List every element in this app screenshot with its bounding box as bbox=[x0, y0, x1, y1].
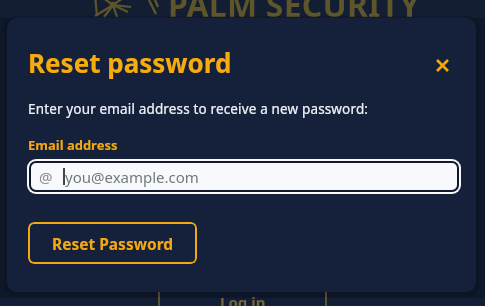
staticText: Email address bbox=[28, 136, 118, 154]
button[interactable] bbox=[158, 285, 327, 306]
button[interactable]: Reset Password bbox=[28, 222, 197, 264]
staticText: PALM SECURITY bbox=[168, 0, 420, 27]
staticText: Enter your email address to receive a ne… bbox=[28, 100, 369, 118]
button[interactable] bbox=[430, 53, 455, 78]
staticText: @ bbox=[39, 167, 53, 187]
staticText: Log in bbox=[220, 292, 266, 306]
button[interactable]: @ bbox=[27, 159, 461, 194]
staticText: you@example.com bbox=[65, 167, 199, 187]
staticText: Reset Password bbox=[52, 233, 174, 254]
staticText: Reset password bbox=[28, 45, 232, 80]
